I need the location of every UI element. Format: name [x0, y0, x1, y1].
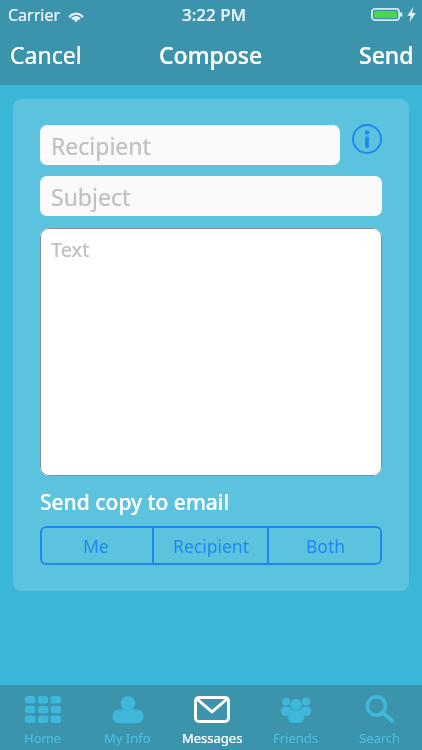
button[interactable]: Me — [40, 526, 152, 565]
staticText: Send — [359, 39, 414, 70]
button[interactable]: Send — [345, 29, 422, 82]
button[interactable]: Cancel — [0, 29, 96, 82]
button[interactable]: Friends — [254, 685, 338, 750]
staticText: Both — [306, 534, 346, 558]
staticText: Home — [24, 729, 61, 747]
staticText: Carrier — [8, 4, 61, 26]
button[interactable]: Search — [338, 685, 422, 750]
staticText: Compose — [159, 39, 263, 70]
staticText: Send copy to email — [40, 488, 230, 517]
button[interactable]: Home — [0, 685, 85, 750]
staticText: My Info — [104, 729, 151, 747]
staticText: Search — [359, 729, 401, 747]
staticText: Recipient — [51, 130, 151, 161]
staticText: Subject — [51, 181, 131, 212]
button[interactable]: Info — [352, 124, 382, 154]
button[interactable]: Subject — [40, 176, 382, 216]
staticText: Me — [83, 534, 109, 558]
button[interactable]: Text — [40, 228, 382, 476]
button[interactable]: Messages — [170, 685, 254, 750]
staticText: Friends — [273, 729, 319, 747]
staticText: Text — [51, 236, 90, 263]
staticText: 3:22 PM — [182, 3, 247, 26]
staticText: Cancel — [10, 39, 82, 70]
button[interactable]: Recipient — [40, 125, 340, 165]
button[interactable]: My Info — [85, 685, 170, 750]
staticText: Recipient — [173, 534, 249, 558]
button[interactable]: Both — [269, 526, 382, 565]
staticText: Messages — [182, 729, 243, 747]
button[interactable]: Recipient — [154, 526, 267, 565]
